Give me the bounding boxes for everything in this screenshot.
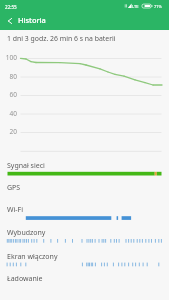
button[interactable]: Sygnał sieci: [0, 161, 169, 181]
button[interactable]: Wybudzony: [0, 228, 169, 248]
staticText: Ekran włączony: [7, 252, 58, 262]
staticText: LTE: [132, 4, 139, 9]
button[interactable]: Ekran włączony: [0, 252, 169, 272]
staticText: Historia: [18, 15, 46, 25]
button[interactable]: Wi-Fi: [0, 205, 169, 225]
button[interactable]: Back: [2, 13, 18, 29]
staticText: Sygnał sieci: [7, 161, 45, 171]
staticText: 40: [0, 109, 17, 118]
staticText: Wi-Fi: [7, 205, 24, 215]
button[interactable]: GPS: [0, 183, 169, 203]
staticText: 20: [0, 127, 17, 136]
staticText: 22:55: [5, 4, 17, 10]
staticText: 1 dni 3 godz. 26 min 6 s na baterii: [7, 34, 116, 43]
staticText: 71%: [154, 4, 162, 9]
staticText: Ładowanie: [7, 274, 43, 284]
staticText: 60: [0, 90, 17, 99]
staticText: GPS: [7, 183, 21, 193]
staticText: 100: [0, 53, 17, 62]
staticText: Wybudzony: [7, 228, 46, 238]
button[interactable]: Ładowanie: [0, 274, 169, 294]
staticText: 80: [0, 72, 17, 81]
